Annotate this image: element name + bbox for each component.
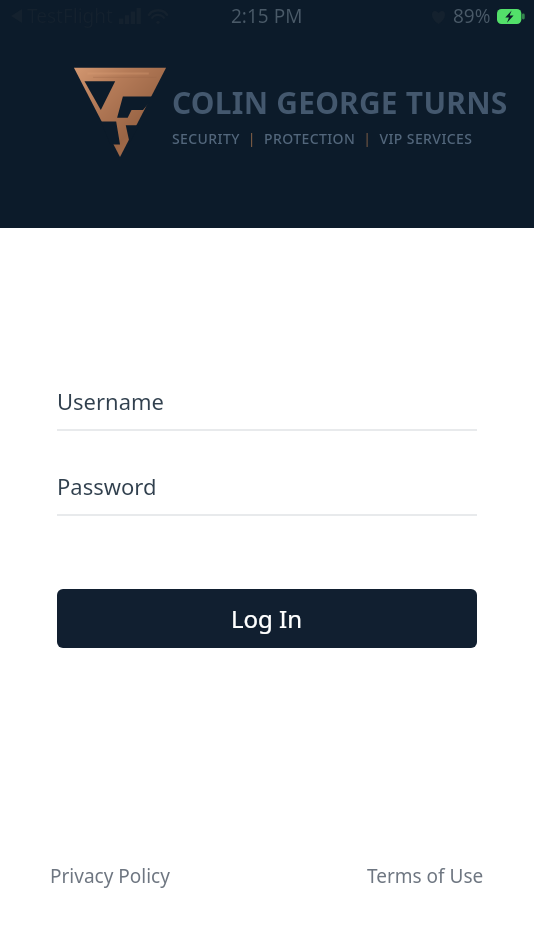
staticText: SECURITY | PROTECTION | VIP SERVICES bbox=[172, 129, 473, 148]
staticText: Password bbox=[57, 471, 157, 501]
staticText: Username bbox=[57, 386, 165, 416]
staticText: Privacy Policy bbox=[50, 863, 170, 889]
button[interactable]: Privacy Policy bbox=[50, 859, 170, 893]
staticText: Terms of Use bbox=[367, 863, 484, 889]
button[interactable]: Password bbox=[0, 471, 534, 516]
button[interactable]: Terms of Use bbox=[367, 859, 484, 893]
staticText: Log In bbox=[231, 602, 303, 635]
staticText: 2:15 PM bbox=[231, 3, 303, 29]
staticText: COLIN GEORGE TURNS bbox=[172, 82, 508, 123]
button[interactable]: Log In bbox=[57, 589, 477, 648]
button[interactable]: Username bbox=[0, 386, 534, 431]
staticText: 89% bbox=[453, 3, 491, 29]
